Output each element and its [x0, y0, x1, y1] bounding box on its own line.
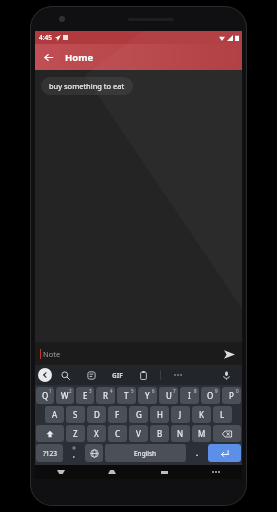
- staticText: 8: [194, 388, 197, 394]
- button[interactable]: Recent apps: [138, 465, 190, 479]
- staticText: L: [220, 409, 225, 420]
- staticText: ?123: [43, 449, 57, 458]
- staticText: I: [188, 390, 191, 401]
- button[interactable]: Home: [86, 465, 138, 479]
- staticText: 4:45: [39, 33, 52, 42]
- staticText: F: [115, 409, 120, 420]
- staticText: 4: [110, 388, 113, 394]
- button[interactable]: H: [150, 406, 169, 423]
- staticText: B: [157, 428, 163, 439]
- button[interactable]: English: [105, 444, 186, 462]
- button[interactable]: Q: [36, 387, 54, 404]
- staticText: X: [94, 428, 99, 439]
- button[interactable]: E: [76, 387, 94, 404]
- button[interactable]: Z: [66, 425, 85, 442]
- staticText: C: [115, 428, 121, 439]
- button[interactable]: Send: [221, 346, 237, 362]
- staticText: Y: [145, 390, 150, 401]
- button[interactable]: More: [190, 465, 242, 479]
- button[interactable]: I: [180, 387, 199, 404]
- staticText: 7: [173, 388, 176, 394]
- button[interactable]: V: [129, 425, 148, 442]
- button[interactable]: F: [108, 406, 127, 423]
- staticText: 9: [215, 388, 218, 394]
- button[interactable]: T: [117, 387, 136, 404]
- staticText: K: [199, 409, 204, 420]
- staticText: 5: [131, 388, 134, 394]
- staticText: T: [124, 390, 129, 401]
- button[interactable]: GIF: [104, 365, 130, 385]
- staticText: .: [196, 448, 199, 458]
- staticText: buy something to eat: [49, 81, 125, 91]
- staticText: E: [83, 390, 88, 401]
- staticText: H: [157, 409, 163, 420]
- staticText: U: [166, 390, 172, 401]
- button[interactable]: Enter: [208, 444, 241, 462]
- staticText: D: [94, 409, 100, 420]
- staticText: A: [52, 409, 58, 420]
- staticText: P: [229, 390, 234, 401]
- staticText: M: [198, 428, 206, 439]
- button[interactable]: K: [192, 406, 211, 423]
- button[interactable]: Search: [52, 365, 78, 385]
- button[interactable]: Y: [138, 387, 157, 404]
- staticText: English: [134, 449, 157, 458]
- staticText: S: [73, 409, 78, 420]
- button[interactable]: Period: [188, 444, 206, 462]
- button[interactable]: More options: [165, 365, 191, 385]
- staticText: Q: [42, 390, 49, 401]
- button[interactable]: N: [171, 425, 190, 442]
- staticText: 1: [49, 388, 52, 394]
- staticText: J: [179, 409, 182, 420]
- staticText: GIF: [112, 371, 123, 380]
- button[interactable]: Back: [35, 44, 61, 70]
- button[interactable]: buy something to eat: [41, 77, 133, 95]
- button[interactable]: G: [129, 406, 148, 423]
- staticText: 6: [152, 388, 155, 394]
- staticText: W: [61, 390, 69, 401]
- staticText: N: [177, 428, 184, 439]
- button[interactable]: Change language: [85, 444, 103, 462]
- button[interactable]: L: [213, 406, 232, 423]
- button[interactable]: J: [171, 406, 190, 423]
- button[interactable]: Collapse toolbar: [38, 368, 52, 382]
- button[interactable]: X: [87, 425, 106, 442]
- staticText: Z: [73, 428, 78, 439]
- button[interactable]: M: [192, 425, 211, 442]
- button[interactable]: C: [108, 425, 127, 442]
- staticText: Home: [65, 51, 94, 64]
- button[interactable]: R: [96, 387, 115, 404]
- staticText: 2: [69, 388, 72, 394]
- button[interactable]: Backspace: [213, 425, 241, 442]
- button[interactable]: Clipboard: [130, 365, 156, 385]
- button[interactable]: Back: [35, 465, 86, 479]
- staticText: 0: [236, 388, 239, 394]
- staticText: 3: [89, 388, 92, 394]
- button[interactable]: W: [56, 387, 74, 404]
- button[interactable]: Stickers: [78, 365, 104, 385]
- button[interactable]: P: [222, 387, 241, 404]
- button[interactable]: A: [45, 406, 64, 423]
- staticText: O: [207, 390, 214, 401]
- button[interactable]: D: [87, 406, 106, 423]
- button[interactable]: U: [159, 387, 178, 404]
- button[interactable]: Shift: [36, 425, 64, 442]
- button[interactable]: Voice input: [213, 365, 239, 385]
- button[interactable]: B: [150, 425, 169, 442]
- button[interactable]: ?123: [36, 444, 63, 462]
- button[interactable]: Comma: [65, 444, 83, 462]
- button[interactable]: S: [66, 406, 85, 423]
- staticText: G: [136, 409, 142, 420]
- staticText: Note: [43, 349, 221, 359]
- staticText: ,: [73, 450, 75, 460]
- staticText: R: [103, 390, 108, 401]
- staticText: V: [136, 428, 141, 439]
- button[interactable]: O: [201, 387, 220, 404]
